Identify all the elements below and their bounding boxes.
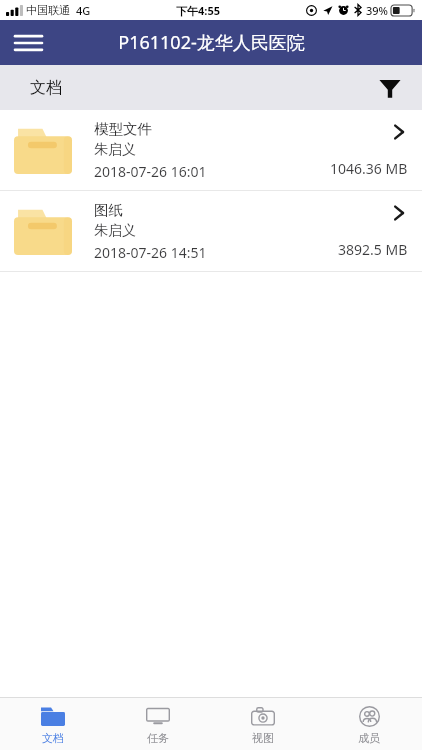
staticText: 下午4:55 <box>176 3 220 18</box>
button[interactable]: 任务 <box>105 698 210 750</box>
staticText: 成员 <box>358 731 380 745</box>
button[interactable]: Filter <box>370 68 410 108</box>
staticText: 朱启义 <box>94 222 136 240</box>
staticText: 2018-07-26 14:51 <box>94 243 207 262</box>
staticText: 文档 <box>42 731 64 745</box>
staticText: P161102-龙华人民医院 <box>118 30 305 55</box>
staticText: 任务 <box>147 731 169 745</box>
button[interactable]: 成员 <box>316 698 422 750</box>
staticText: 文档 <box>30 78 62 98</box>
staticText: 朱启义 <box>94 141 136 159</box>
staticText: 3892.5 MB <box>338 240 408 259</box>
staticText: 视图 <box>252 731 274 745</box>
staticText: 图纸 <box>94 201 123 219</box>
staticText: 模型文件 <box>94 120 152 138</box>
button[interactable]: 文档 <box>0 698 105 750</box>
staticText: 39% <box>366 3 388 18</box>
staticText: 4G <box>76 3 91 18</box>
button[interactable]: 视图 <box>210 698 316 750</box>
staticText: 中国联通 <box>26 3 70 17</box>
staticText: 1046.36 MB <box>330 159 408 178</box>
button[interactable]: Menu <box>7 22 49 64</box>
button[interactable]: 模型文件 <box>0 110 422 190</box>
button[interactable]: 图纸 <box>0 191 422 271</box>
staticText: 2018-07-26 16:01 <box>94 162 207 181</box>
